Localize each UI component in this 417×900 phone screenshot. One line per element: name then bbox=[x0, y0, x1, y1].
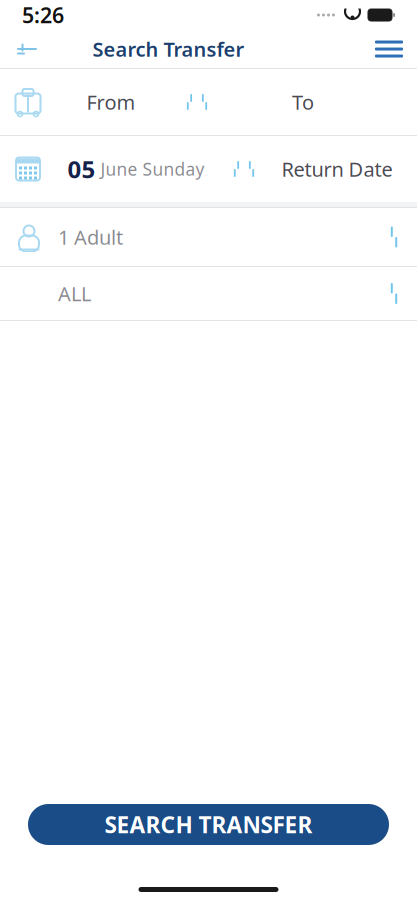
button[interactable]: 1 Adult bbox=[0, 208, 417, 266]
staticText: Search Transfer bbox=[92, 36, 244, 62]
staticText: 05 bbox=[67, 153, 95, 185]
staticText: ALL bbox=[58, 280, 91, 307]
staticText: June Sunday bbox=[100, 157, 204, 180]
staticText: To bbox=[292, 89, 314, 115]
staticText: SEARCH TRANSFER bbox=[104, 809, 312, 839]
button[interactable]: SEARCH TRANSFER bbox=[28, 804, 389, 845]
staticText: 5:26 bbox=[22, 1, 64, 29]
button[interactable]: Back bbox=[6, 32, 48, 66]
staticText: Return Date bbox=[281, 156, 392, 182]
staticText: From bbox=[86, 89, 135, 115]
button[interactable]: 05 bbox=[0, 136, 417, 202]
button[interactable]: ALL bbox=[0, 267, 417, 320]
button[interactable]: From bbox=[0, 69, 417, 135]
button[interactable]: Menu bbox=[367, 32, 411, 66]
staticText: 1 Adult bbox=[58, 224, 123, 250]
